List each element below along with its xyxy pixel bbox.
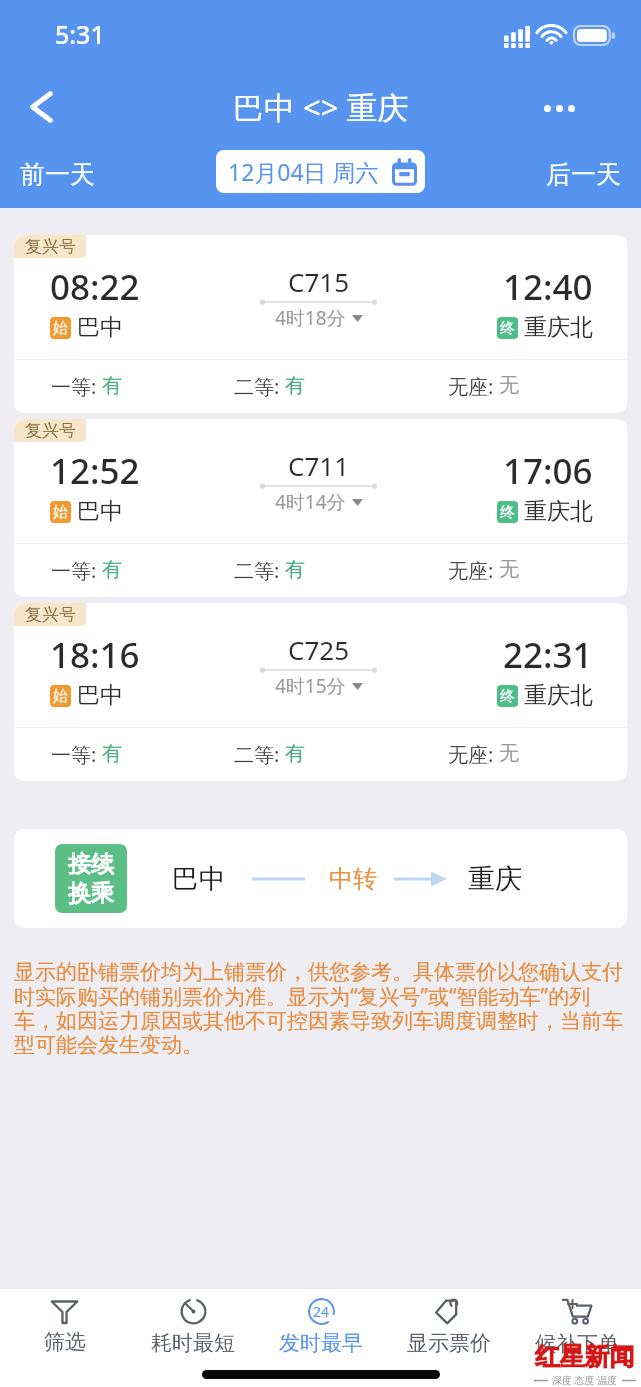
- staticText: 终: [500, 503, 515, 522]
- staticText: 08:22: [50, 263, 140, 311]
- staticText: 显示的卧铺票价均为上铺票价，供您参考。具体票价以您确认支付时实际购买的铺别票价为…: [14, 959, 627, 1059]
- staticText: 12月04日 周六: [228, 156, 379, 187]
- staticText: 无座:: [448, 373, 499, 400]
- staticText: 5:31: [55, 17, 105, 51]
- staticText: 有: [102, 557, 122, 582]
- staticText: 二等:: [234, 557, 285, 584]
- staticText: 巴中: [77, 497, 123, 526]
- staticText: 复兴号: [25, 236, 76, 257]
- staticText: 有: [285, 557, 305, 582]
- button[interactable]: 24: [257, 1289, 385, 1364]
- staticText: 一等:: [51, 557, 102, 584]
- staticText: 候补下单: [535, 1331, 619, 1357]
- staticText: 无: [499, 557, 519, 582]
- button[interactable]: 耗时最短: [129, 1289, 257, 1364]
- staticText: 发时最早: [279, 1330, 363, 1356]
- button[interactable]: 后一天: [540, 151, 627, 198]
- staticText: C715: [288, 264, 350, 299]
- staticText: 17:06: [503, 447, 593, 495]
- staticText: 重庆北: [524, 497, 593, 526]
- staticText: 筛选: [44, 1329, 86, 1355]
- staticText: 无: [499, 373, 519, 398]
- staticText: 重庆: [468, 862, 522, 896]
- staticText: 巴中: [172, 862, 226, 896]
- button[interactable]: 候补下单: [513, 1289, 641, 1364]
- button[interactable]: 12月04日 周六: [216, 150, 425, 193]
- staticText: 二等:: [234, 741, 285, 768]
- staticText: 一等:: [51, 373, 102, 400]
- button[interactable]: More options: [526, 72, 592, 138]
- staticText: 有: [102, 373, 122, 398]
- staticText: 始: [53, 503, 68, 522]
- staticText: 12:40: [503, 263, 593, 311]
- staticText: C711: [288, 448, 350, 483]
- button[interactable]: 复兴号: [14, 603, 627, 781]
- staticText: C725: [288, 632, 350, 667]
- button[interactable]: 前一天: [14, 151, 101, 198]
- staticText: 4时14分: [275, 489, 346, 515]
- staticText: 重庆北: [524, 681, 593, 710]
- staticText: 24: [313, 1302, 330, 1321]
- staticText: 无: [499, 741, 519, 766]
- staticText: 深度 态度 温度: [552, 1373, 618, 1387]
- staticText: 巴中 <> 重庆: [233, 86, 409, 128]
- staticText: 复兴号: [25, 420, 76, 441]
- staticText: 接续: [68, 850, 114, 879]
- staticText: 终: [500, 319, 515, 338]
- button[interactable]: 显示票价: [385, 1289, 513, 1364]
- staticText: 巴中: [77, 681, 123, 710]
- button[interactable]: Back: [10, 74, 72, 136]
- staticText: 红星新闻: [535, 1341, 635, 1372]
- staticText: 始: [53, 319, 68, 338]
- staticText: 中转: [329, 864, 377, 894]
- staticText: 巴中: [77, 313, 123, 342]
- staticText: 始: [53, 687, 68, 706]
- staticText: 18:16: [50, 631, 140, 679]
- staticText: 有: [102, 741, 122, 766]
- staticText: 复兴号: [25, 604, 76, 625]
- button[interactable]: 复兴号: [14, 235, 627, 413]
- staticText: 换乘: [68, 879, 114, 908]
- staticText: 显示票价: [407, 1330, 491, 1356]
- button[interactable]: 接续: [14, 829, 627, 928]
- staticText: 12:52: [50, 447, 140, 495]
- staticText: 有: [285, 741, 305, 766]
- button[interactable]: 复兴号: [14, 419, 627, 597]
- staticText: 22:31: [503, 631, 593, 679]
- staticText: 耗时最短: [151, 1330, 235, 1356]
- staticText: 有: [285, 373, 305, 398]
- staticText: 二等:: [234, 373, 285, 400]
- staticText: 4时15分: [275, 673, 346, 699]
- staticText: 终: [500, 687, 515, 706]
- button[interactable]: 筛选: [0, 1289, 129, 1364]
- staticText: 4时18分: [275, 305, 346, 331]
- staticText: 无座:: [448, 557, 499, 584]
- staticText: 重庆北: [524, 313, 593, 342]
- staticText: 无座:: [448, 741, 499, 768]
- staticText: 一等:: [51, 741, 102, 768]
